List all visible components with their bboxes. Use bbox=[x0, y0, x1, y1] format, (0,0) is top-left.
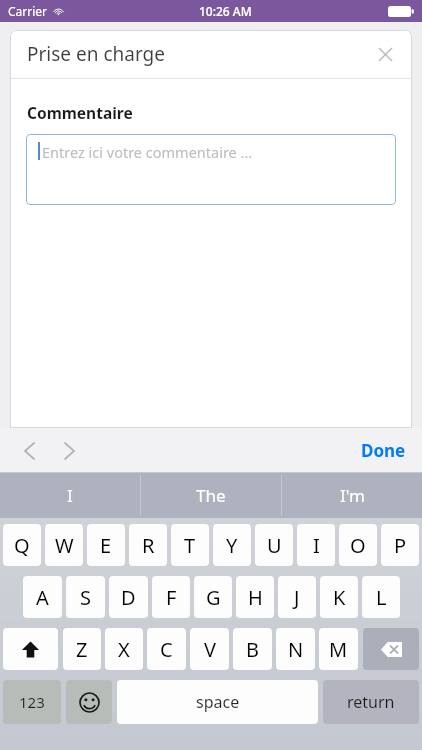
button[interactable]: C bbox=[147, 628, 186, 670]
staticText: I bbox=[67, 484, 73, 507]
staticText: F bbox=[166, 584, 177, 611]
button[interactable]: W bbox=[45, 524, 83, 566]
button[interactable]: Z bbox=[63, 628, 101, 670]
staticText: T bbox=[184, 532, 196, 559]
button[interactable]: R bbox=[129, 524, 167, 566]
button[interactable]: Close bbox=[368, 37, 402, 71]
button[interactable]: N bbox=[276, 628, 315, 670]
staticText: K bbox=[333, 584, 346, 611]
staticText: Q bbox=[14, 532, 30, 559]
button[interactable]: Entrez ici votre commentaire ... bbox=[26, 134, 396, 205]
staticText: P bbox=[394, 532, 407, 559]
staticText: Entrez ici votre commentaire ... bbox=[42, 142, 253, 162]
staticText: Y bbox=[226, 532, 238, 559]
button[interactable]: G bbox=[194, 576, 232, 618]
staticText: C bbox=[160, 636, 173, 663]
button[interactable]: V bbox=[190, 628, 229, 670]
staticText: G bbox=[206, 584, 221, 611]
button[interactable]: O bbox=[339, 524, 377, 566]
button[interactable]: X bbox=[105, 628, 143, 670]
staticText: N bbox=[288, 636, 304, 663]
staticText: Carrier bbox=[8, 3, 48, 19]
staticText: W bbox=[55, 532, 74, 559]
button[interactable]: K bbox=[320, 576, 358, 618]
button[interactable]: space bbox=[117, 680, 318, 724]
staticText: Z bbox=[76, 636, 88, 663]
button[interactable]: I bbox=[0, 473, 140, 518]
staticText: H bbox=[248, 584, 263, 611]
button[interactable]: Next field bbox=[54, 436, 84, 466]
button[interactable]: B bbox=[233, 628, 272, 670]
button[interactable]: P bbox=[381, 524, 419, 566]
staticText: U bbox=[267, 532, 282, 559]
staticText: 10:26 AM bbox=[199, 3, 252, 19]
staticText: I bbox=[313, 532, 320, 559]
button[interactable]: F bbox=[152, 576, 190, 618]
button[interactable]: I bbox=[297, 524, 335, 566]
button[interactable]: U bbox=[255, 524, 293, 566]
button[interactable]: L bbox=[362, 576, 400, 618]
button[interactable]: The bbox=[141, 473, 281, 518]
staticText: B bbox=[246, 636, 259, 663]
staticText: The bbox=[196, 484, 226, 507]
staticText: O bbox=[350, 532, 366, 559]
staticText: Commentaire bbox=[27, 102, 133, 123]
staticText: S bbox=[80, 584, 91, 611]
staticText: A bbox=[36, 584, 49, 611]
staticText: E bbox=[100, 532, 112, 559]
button[interactable]: Emoji bbox=[66, 680, 112, 724]
button[interactable]: A bbox=[23, 576, 62, 618]
button[interactable]: I'm bbox=[282, 473, 422, 518]
staticText: Prise en charge bbox=[27, 41, 165, 67]
button[interactable]: Done bbox=[353, 433, 414, 468]
staticText: J bbox=[294, 584, 300, 611]
button[interactable]: 123 bbox=[3, 680, 61, 724]
button[interactable]: H bbox=[236, 576, 274, 618]
button[interactable]: Backspace bbox=[363, 628, 419, 670]
staticText: I'm bbox=[340, 484, 365, 507]
button[interactable]: D bbox=[109, 576, 148, 618]
button[interactable]: Q bbox=[3, 524, 41, 566]
staticText: X bbox=[118, 636, 130, 663]
staticText: V bbox=[204, 636, 216, 663]
button[interactable]: Shift bbox=[3, 628, 58, 670]
button[interactable]: return bbox=[323, 680, 419, 724]
button[interactable]: J bbox=[278, 576, 316, 618]
button[interactable]: Previous field bbox=[14, 436, 44, 466]
staticText: 123 bbox=[19, 692, 45, 712]
staticText: Done bbox=[361, 439, 406, 462]
staticText: D bbox=[121, 584, 136, 611]
button[interactable]: M bbox=[319, 628, 358, 670]
button[interactable]: T bbox=[171, 524, 209, 566]
staticText: L bbox=[376, 584, 387, 611]
staticText: return bbox=[347, 691, 395, 713]
staticText: R bbox=[142, 532, 155, 559]
staticText: space bbox=[196, 691, 240, 713]
staticText: M bbox=[329, 636, 348, 663]
button[interactable]: E bbox=[87, 524, 125, 566]
button[interactable]: Y bbox=[213, 524, 251, 566]
button[interactable]: S bbox=[66, 576, 105, 618]
